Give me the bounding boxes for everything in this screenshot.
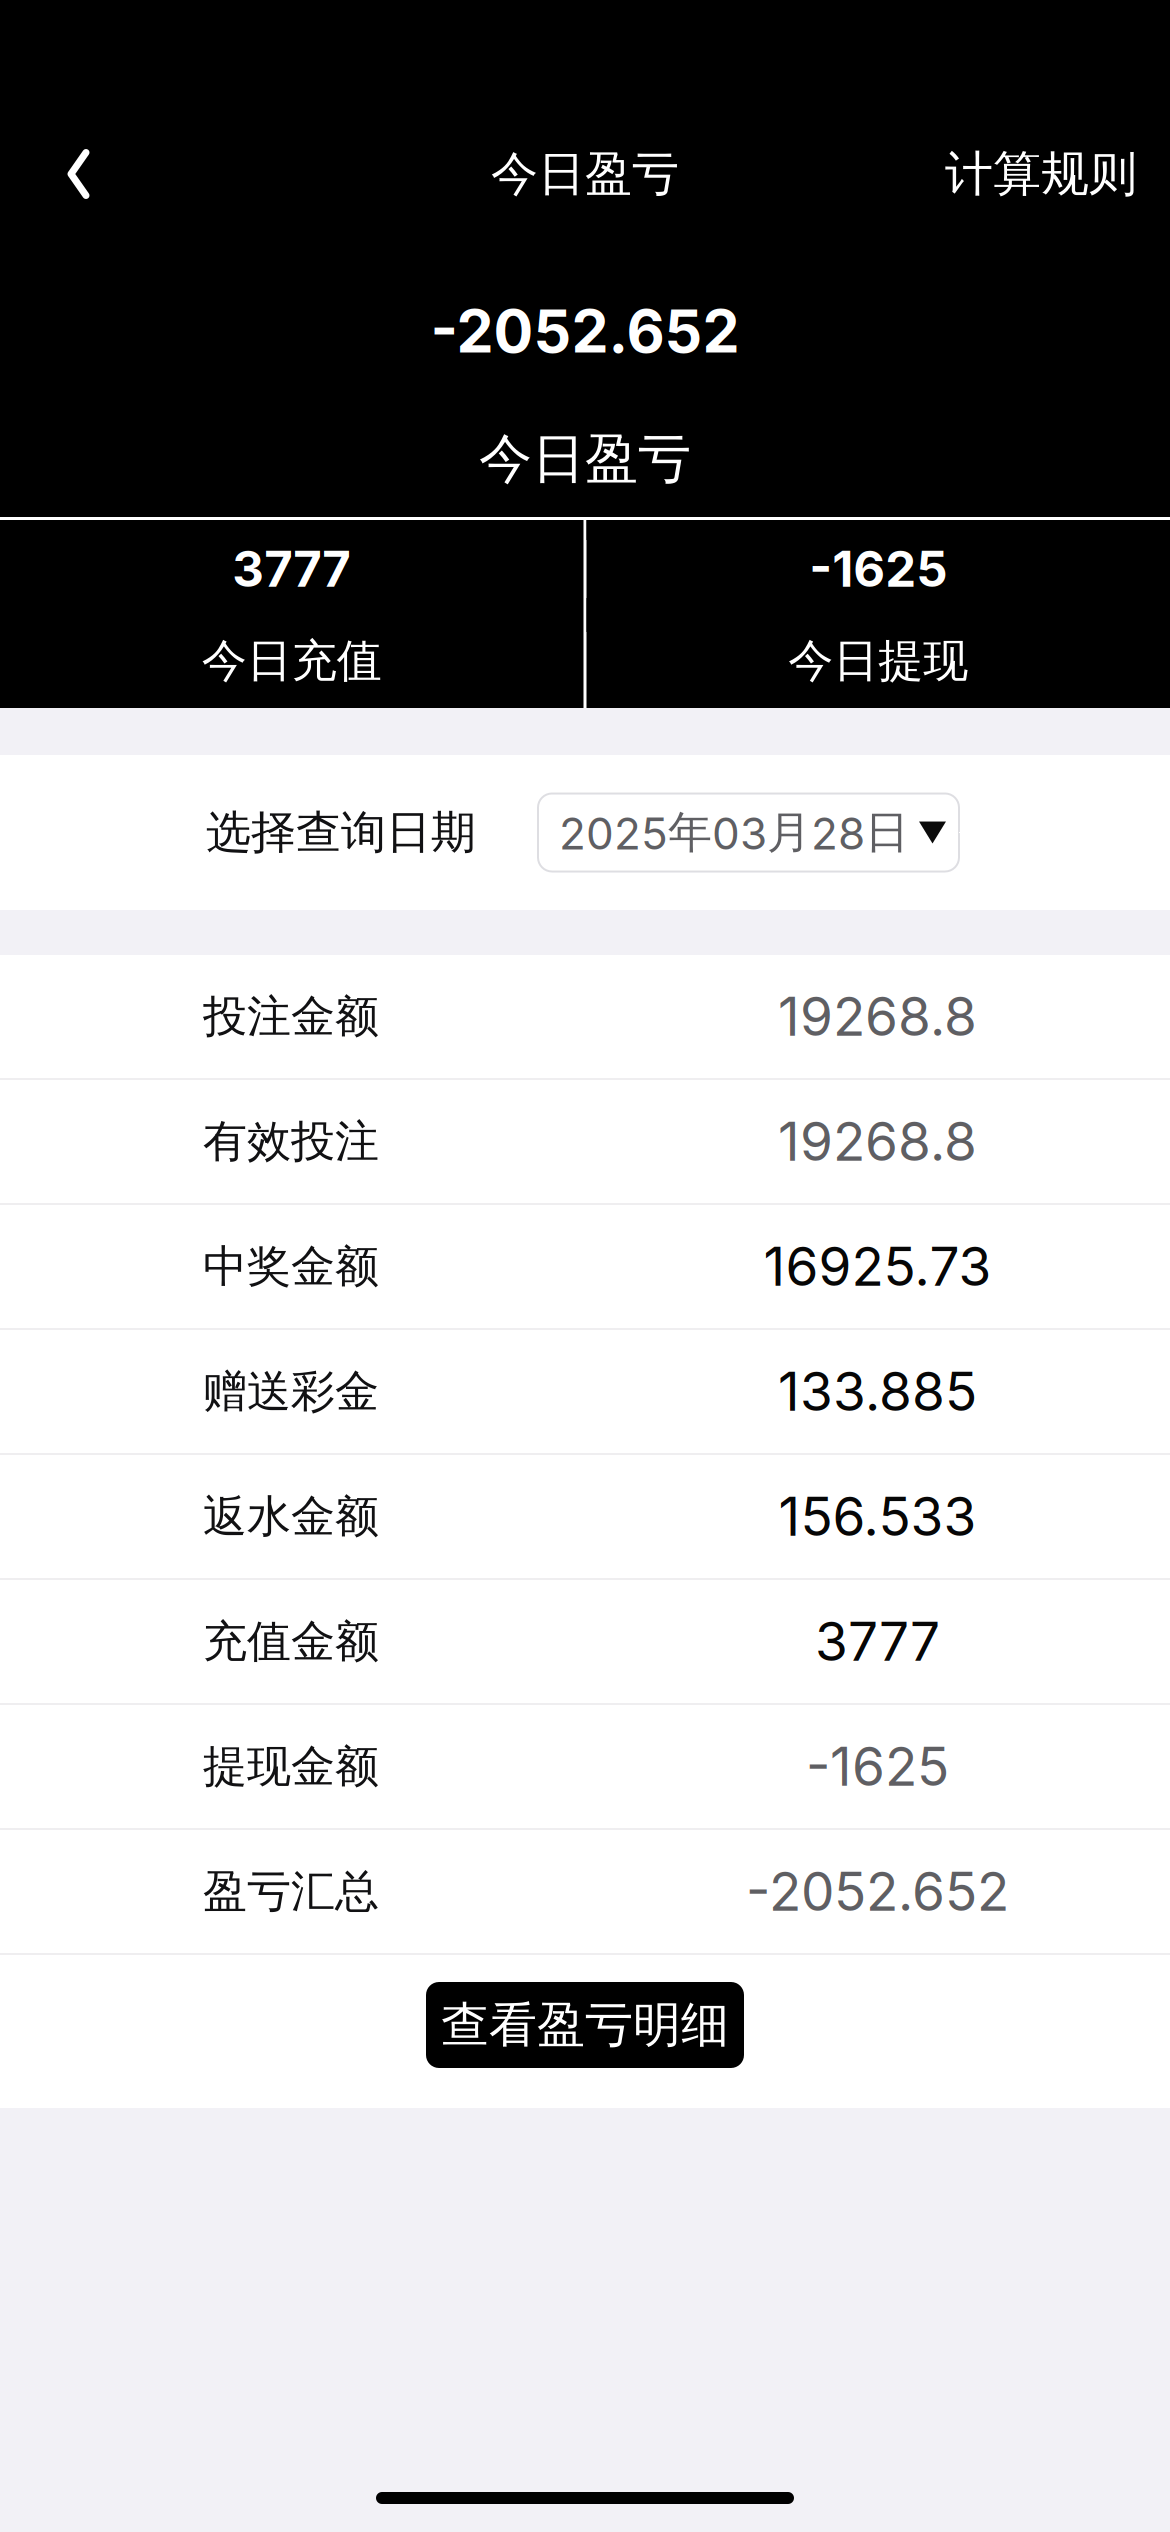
staticText: 今日盈亏 (491, 144, 679, 203)
staticText: 赠送彩金 (203, 1364, 379, 1419)
staticText: 中奖金额 (203, 1239, 379, 1294)
button[interactable]: 查看盈亏明细 (426, 1982, 744, 2068)
button[interactable]: 2025年03月28日 (538, 793, 959, 871)
staticText: 19268.8 (778, 984, 977, 1049)
staticText: 156.533 (778, 1484, 976, 1549)
staticText: 今日充值 (202, 633, 382, 689)
staticText: 16925.73 (763, 1234, 991, 1299)
staticText: 返水金额 (203, 1489, 379, 1544)
staticText: -1625 (809, 539, 947, 599)
staticText: -1625 (806, 1734, 949, 1799)
button[interactable]: Back (0, 119, 157, 229)
staticText: 3777 (232, 539, 351, 599)
button[interactable]: 计算规则 (945, 119, 1170, 229)
staticText: 今日提现 (788, 633, 968, 689)
staticText: 今日盈亏 (479, 426, 691, 492)
staticText: -2052.652 (430, 295, 739, 367)
staticText: 19268.8 (778, 1109, 977, 1174)
staticText: 有效投注 (203, 1114, 379, 1169)
staticText: 查看盈亏明细 (441, 1995, 729, 2055)
staticText: 133.885 (778, 1359, 977, 1424)
staticText: -2052.652 (746, 1859, 1009, 1924)
staticText: 提现金额 (203, 1739, 379, 1794)
staticText: 计算规则 (945, 144, 1137, 204)
staticText: 2025年03月28日 (559, 805, 909, 860)
staticText: 3777 (815, 1609, 940, 1674)
staticText: 选择查询日期 (206, 804, 476, 861)
staticText: 投注金额 (203, 989, 379, 1044)
staticText: 盈亏汇总 (203, 1864, 379, 1919)
staticText: 充值金额 (203, 1614, 379, 1669)
